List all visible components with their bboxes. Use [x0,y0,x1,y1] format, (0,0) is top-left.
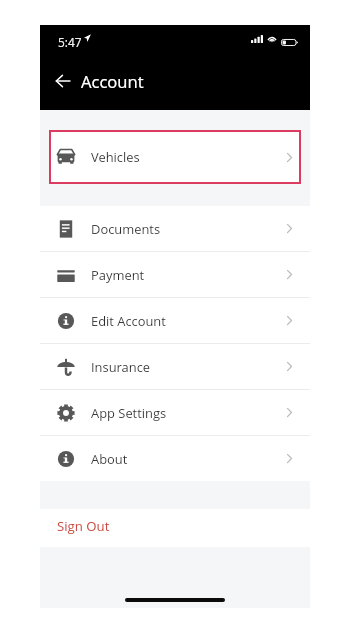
button[interactable]: Insurance [40,344,310,389]
button[interactable]: Back [53,70,72,92]
button[interactable]: Sign Out [40,509,310,547]
staticText: 5:47 [58,34,82,50]
staticText: Documents [91,220,161,238]
button[interactable]: Vehicles [49,130,301,184]
button[interactable]: App Settings [40,390,310,435]
staticText: About [91,450,128,468]
button[interactable]: Payment [40,252,310,297]
button[interactable]: Edit Account [40,298,310,343]
staticText: Account [81,70,144,93]
staticText: Payment [91,266,145,284]
staticText: Insurance [91,358,151,376]
staticText: App Settings [91,404,167,422]
staticText: Vehicles [91,148,140,166]
staticText: Sign Out [57,517,110,535]
button[interactable]: Documents [40,206,310,251]
staticText: Edit Account [91,312,166,330]
button[interactable]: About [40,436,310,481]
